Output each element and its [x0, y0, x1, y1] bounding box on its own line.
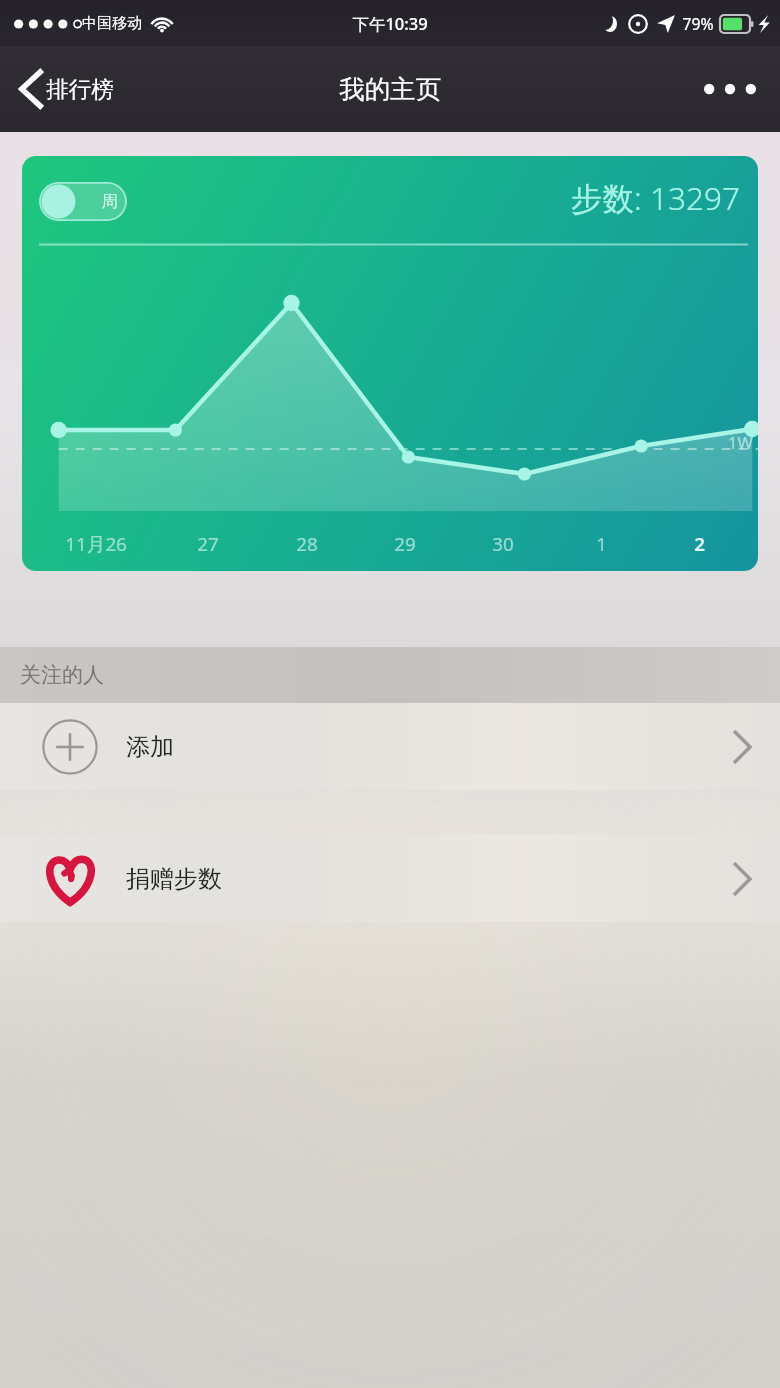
staticText: 27 — [197, 531, 219, 557]
staticText: 步数: 13297 — [571, 176, 740, 219]
staticText: 关注的人 — [20, 662, 104, 688]
staticText: 1 — [596, 531, 607, 557]
button[interactable]: 排行榜 — [12, 62, 122, 116]
button[interactable]: 捐赠步数 — [0, 835, 780, 922]
staticText: 30 — [492, 531, 514, 557]
staticText: 周 — [101, 191, 118, 212]
staticText: 添加 — [126, 732, 174, 762]
staticText: 我的主页 — [339, 73, 441, 105]
button[interactable]: Week toggle — [22, 156, 758, 571]
staticText: 1W — [728, 431, 753, 453]
button[interactable]: 添加 — [0, 703, 780, 790]
button[interactable]: More options — [694, 73, 766, 105]
staticText: 排行榜 — [46, 75, 114, 103]
staticText: 28 — [296, 531, 318, 557]
staticText: 中国移动 — [82, 14, 142, 33]
staticText: 下午10:39 — [352, 12, 428, 35]
button[interactable]: Week toggle — [39, 182, 127, 221]
staticText: 11月26 — [65, 531, 127, 557]
staticText: 2 — [694, 531, 705, 557]
staticText: 捐赠步数 — [126, 864, 222, 894]
staticText: 79% — [682, 13, 714, 34]
staticText: 29 — [394, 531, 416, 557]
